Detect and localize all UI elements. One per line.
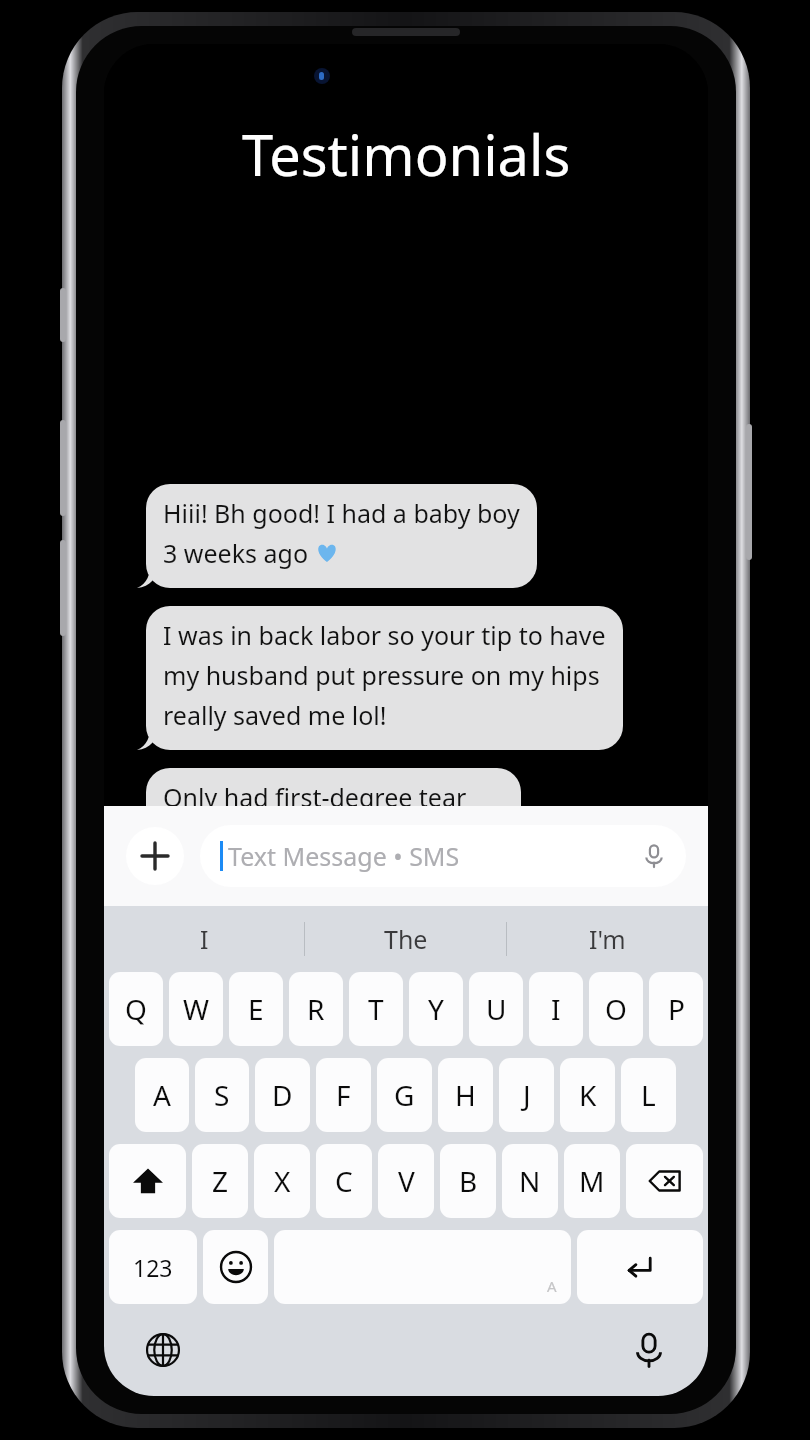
staticText: M: [579, 1162, 605, 1200]
button[interactable]: Text Message • SMS: [200, 825, 686, 887]
button[interactable]: E: [229, 972, 283, 1046]
staticText: I: [551, 990, 561, 1028]
staticText: W: [183, 990, 210, 1028]
button[interactable]: T: [349, 972, 403, 1046]
button[interactable]: Z: [192, 1144, 248, 1218]
staticText: Only had first-degree tear: [163, 780, 467, 814]
other: Dictate: [642, 844, 666, 868]
staticText: my husband put pressure on my hips: [163, 658, 600, 692]
button[interactable]: Shift: [109, 1144, 186, 1218]
staticText: F: [336, 1076, 351, 1114]
staticText: A: [153, 1076, 171, 1114]
button[interactable]: I'm: [507, 906, 708, 972]
staticText: B: [459, 1162, 478, 1200]
button[interactable]: Return: [577, 1230, 703, 1304]
staticText: J: [523, 1076, 531, 1114]
staticText: I'm: [589, 922, 626, 956]
button[interactable]: Dictation: [626, 1327, 672, 1373]
staticText: V: [398, 1162, 415, 1200]
staticText: G: [394, 1076, 415, 1114]
staticText: A: [547, 1276, 557, 1296]
staticText: Text Message • SMS: [228, 839, 460, 873]
button[interactable]: U: [469, 972, 523, 1046]
button[interactable]: Hiii! Bh good! I had a baby boy: [146, 484, 537, 588]
staticText: S: [214, 1076, 230, 1114]
button[interactable]: K: [560, 1058, 615, 1132]
button[interactable]: Space: [274, 1230, 571, 1304]
staticText: T: [368, 990, 384, 1028]
button[interactable]: G: [377, 1058, 432, 1132]
staticText: K: [579, 1076, 597, 1114]
button[interactable]: J: [499, 1058, 554, 1132]
button[interactable]: W: [169, 972, 223, 1046]
button[interactable]: 123: [109, 1230, 197, 1304]
button[interactable]: Emoji: [203, 1230, 268, 1304]
staticText: D: [272, 1076, 293, 1114]
button[interactable]: C: [316, 1144, 372, 1218]
button[interactable]: The: [305, 906, 506, 972]
button[interactable]: B: [440, 1144, 496, 1218]
button[interactable]: N: [502, 1144, 558, 1218]
staticText: 123: [133, 1252, 173, 1283]
staticText: really saved me lol!: [163, 698, 387, 732]
staticText: Testimonials: [242, 116, 571, 192]
staticText: H: [455, 1076, 476, 1114]
button[interactable]: A: [135, 1058, 189, 1132]
staticText: R: [307, 990, 325, 1028]
staticText: and recovery has been great!: [163, 820, 504, 854]
button[interactable]: F: [316, 1058, 371, 1132]
staticText: O: [605, 990, 627, 1028]
button[interactable]: P: [649, 972, 703, 1046]
button[interactable]: L: [621, 1058, 676, 1132]
button[interactable]: Q: [109, 972, 163, 1046]
button[interactable]: Change keyboard language: [140, 1327, 186, 1373]
staticText: Q: [125, 990, 147, 1028]
button[interactable]: O: [589, 972, 643, 1046]
staticText: P: [668, 990, 685, 1028]
button[interactable]: H: [438, 1058, 493, 1132]
staticText: 3 weeks ago: [163, 536, 315, 570]
staticText: C: [335, 1162, 353, 1200]
staticText: The: [384, 922, 428, 956]
staticText: L: [641, 1076, 656, 1114]
button[interactable]: M: [564, 1144, 620, 1218]
button[interactable]: X: [254, 1144, 310, 1218]
button[interactable]: V: [378, 1144, 434, 1218]
button[interactable]: R: [289, 972, 343, 1046]
button[interactable]: Backspace: [626, 1144, 703, 1218]
button[interactable]: I was in back labor so your tip to have: [146, 606, 623, 750]
staticText: I: [200, 922, 209, 956]
button[interactable]: Only had first-degree tear: [146, 768, 521, 872]
staticText: E: [248, 990, 264, 1028]
button[interactable]: Y: [409, 972, 463, 1046]
staticText: Y: [428, 990, 444, 1028]
staticText: I was in back labor so your tip to have: [163, 618, 606, 652]
button[interactable]: I: [529, 972, 583, 1046]
staticText: Z: [212, 1162, 229, 1200]
button[interactable]: D: [255, 1058, 310, 1132]
button[interactable]: S: [195, 1058, 249, 1132]
button[interactable]: Add attachment: [126, 827, 184, 885]
button[interactable]: I: [104, 906, 304, 972]
staticText: U: [486, 990, 507, 1028]
staticText: X: [274, 1162, 291, 1200]
staticText: Hiii! Bh good! I had a baby boy: [163, 496, 520, 530]
staticText: N: [519, 1162, 541, 1200]
